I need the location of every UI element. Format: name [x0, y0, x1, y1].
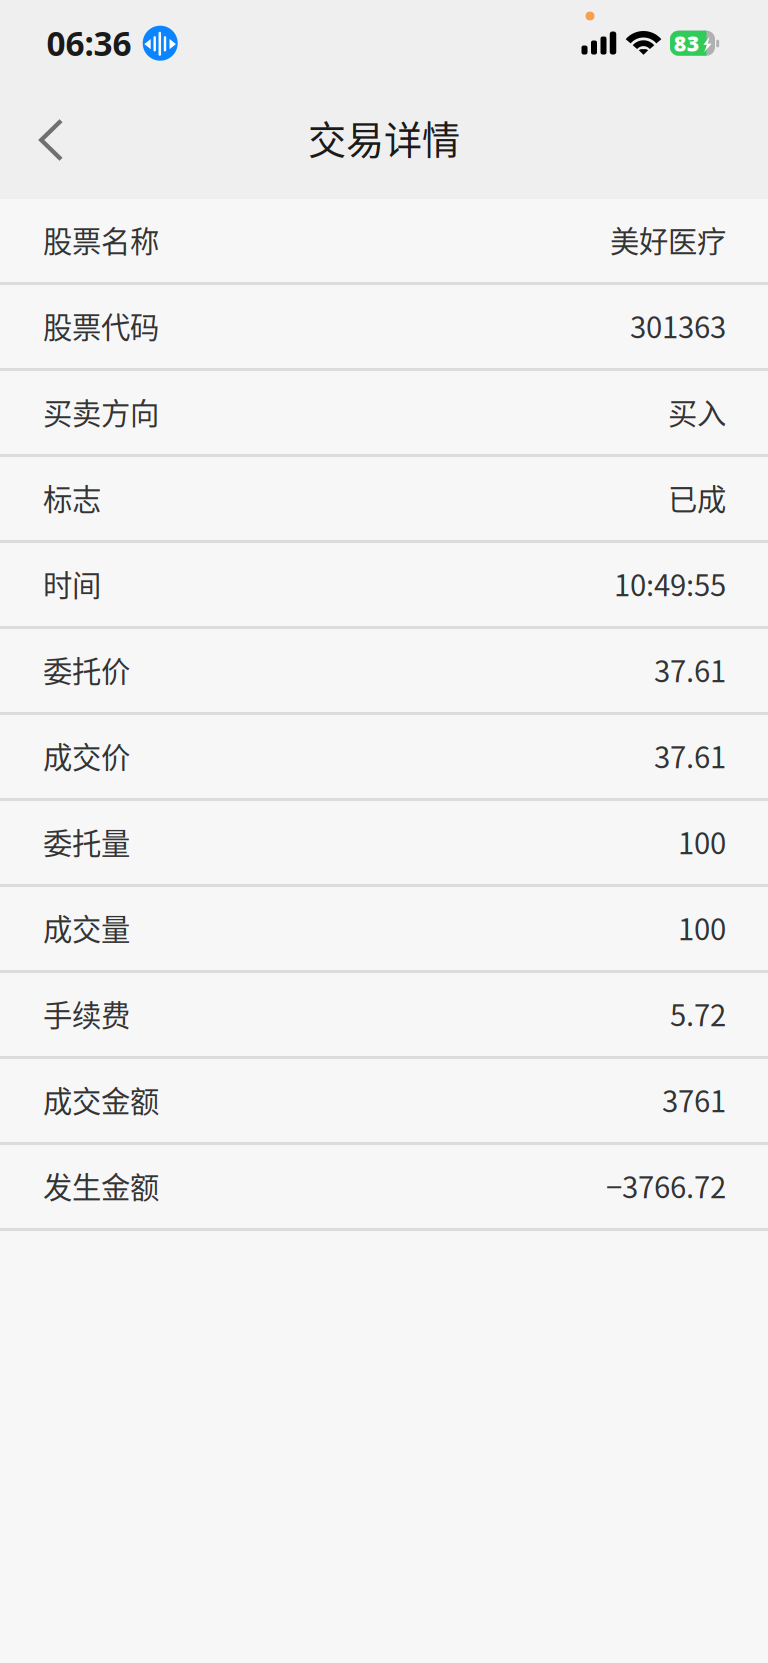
staticText: 成交价: [43, 734, 130, 777]
staticText: 3761: [662, 1078, 726, 1121]
button[interactable]: Back: [0, 92, 100, 186]
staticText: 委托价: [43, 648, 130, 691]
staticText: 买卖方向: [43, 390, 159, 433]
staticText: 37.61: [654, 648, 726, 691]
staticText: 06:36: [46, 21, 131, 65]
staticText: 37.61: [654, 734, 726, 777]
staticText: 时间: [43, 562, 101, 605]
staticText: 301363: [630, 304, 726, 347]
staticText: 100: [678, 906, 726, 949]
staticText: 手续费: [43, 992, 130, 1035]
staticText: 标志: [43, 476, 101, 519]
staticText: 买入: [668, 390, 726, 433]
staticText: 美好医疗: [610, 218, 726, 261]
staticText: 股票名称: [43, 218, 159, 261]
staticText: 100: [678, 820, 726, 863]
staticText: 成交量: [43, 906, 130, 949]
staticText: 已成: [668, 476, 726, 519]
staticText: 交易详情: [308, 110, 460, 165]
staticText: 5.72: [670, 992, 726, 1035]
staticText: −3766.72: [606, 1164, 726, 1207]
staticText: 委托量: [43, 820, 130, 863]
staticText: 成交金额: [43, 1078, 159, 1121]
staticText: 10:49:55: [614, 562, 726, 605]
staticText: 发生金额: [43, 1164, 159, 1207]
staticText: 83: [674, 29, 700, 57]
staticText: 股票代码: [43, 304, 159, 347]
